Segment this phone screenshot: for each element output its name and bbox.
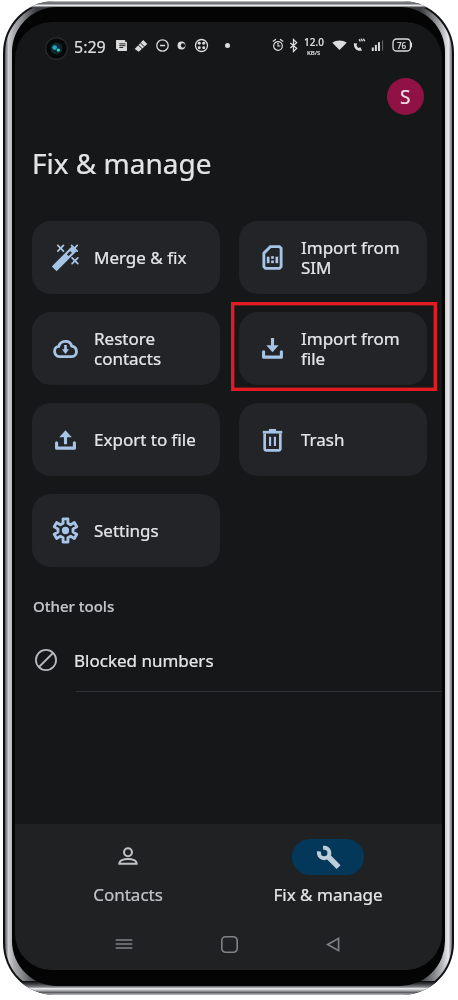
button[interactable]: Settings: [32, 494, 220, 567]
button[interactable]: Fix & manage: [248, 824, 408, 910]
staticText: Import from SIM: [301, 236, 400, 279]
staticText: Merge & fix: [94, 246, 187, 269]
staticText: S: [400, 84, 411, 110]
button[interactable]: Blocked numbers: [15, 637, 427, 683]
staticText: Blocked numbers: [74, 649, 214, 672]
staticText: Fix & manage: [273, 883, 383, 906]
staticText: Export to file: [94, 428, 196, 451]
button[interactable]: Home: [211, 926, 247, 962]
button[interactable]: Import from SIM: [239, 221, 427, 294]
button[interactable]: Import from file: [239, 312, 427, 385]
staticText: Import from file: [301, 327, 400, 370]
staticText: KB/S: [307, 49, 321, 55]
staticText: Fix & manage: [32, 144, 212, 182]
button[interactable]: Account: [387, 78, 424, 115]
button[interactable]: Contacts: [48, 824, 208, 910]
staticText: 5:29: [74, 36, 106, 58]
staticText: 12.0: [304, 35, 324, 49]
button[interactable]: Export to file: [32, 403, 220, 476]
staticText: Trash: [301, 428, 345, 451]
staticText: 76: [397, 40, 407, 51]
staticText: Contacts: [93, 883, 163, 906]
button[interactable]: Trash: [239, 403, 427, 476]
staticText: Restore contacts: [94, 327, 162, 370]
button[interactable]: Recent apps: [106, 926, 142, 962]
button[interactable]: Restore contacts: [32, 312, 220, 385]
button[interactable]: Merge & fix: [32, 221, 220, 294]
staticText: Other tools: [33, 596, 115, 616]
staticText: Settings: [94, 519, 159, 542]
button[interactable]: Back: [315, 926, 351, 962]
